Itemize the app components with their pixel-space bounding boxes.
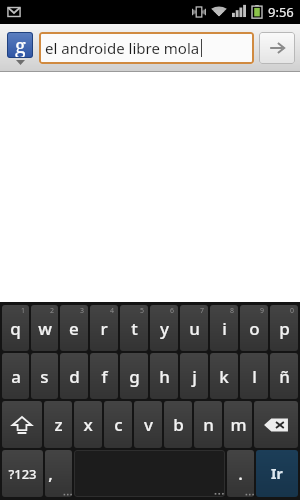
staticText: 2 [50,306,55,316]
staticText: d [69,365,80,388]
button[interactable]: h [150,353,178,399]
staticText: 9 [260,306,265,316]
button[interactable]: Backspace [254,401,298,448]
staticText: p [279,317,290,340]
staticText: b [173,413,184,436]
button[interactable]: f [90,353,118,399]
staticText: g [15,32,26,58]
button[interactable]: a [2,353,29,399]
button[interactable]: r [90,305,118,351]
button[interactable]: z [44,401,72,448]
button[interactable]: Search provider: Google [5,32,35,65]
staticText: u [189,317,200,340]
staticText: . [238,462,243,485]
button[interactable]: p [270,305,298,351]
staticText: i [222,317,227,340]
button[interactable]: n [194,401,222,448]
button[interactable]: el androide libre mola [39,32,254,64]
staticText: w [38,317,52,340]
button[interactable]: c [104,401,132,448]
staticText: 6 [170,306,175,316]
staticText: c [114,413,123,436]
staticText: 1 [21,306,26,316]
staticText: 9:56 [268,3,294,21]
staticText: q [10,317,21,340]
staticText: o [249,317,260,340]
button[interactable]: Space [74,450,225,497]
button[interactable]: g [120,353,148,399]
staticText: m [230,413,247,436]
staticText: el androide libre mola [45,38,200,58]
button[interactable]: l [240,353,268,399]
button[interactable]: Search [259,32,295,64]
button[interactable]: i [210,305,238,351]
staticText: k [219,365,229,388]
staticText: v [144,413,153,436]
staticText: n [203,413,214,436]
staticText: s [40,365,49,388]
button[interactable]: , [45,450,72,497]
staticText: ñ [279,365,290,388]
staticText: 5 [140,306,145,316]
staticText: e [69,317,79,340]
button[interactable]: y [150,305,178,351]
staticText: Ir [271,464,283,483]
button[interactable]: q [2,305,29,351]
button[interactable]: Shift [2,401,42,448]
button[interactable]: ñ [270,353,298,399]
button[interactable]: m [224,401,252,448]
button[interactable]: w [31,305,58,351]
staticText: y [160,317,169,340]
button[interactable]: k [210,353,238,399]
staticText: r [100,317,108,340]
staticText: 0 [290,306,295,316]
staticText: 7 [200,306,205,316]
staticText: 8 [230,306,235,316]
button[interactable]: d [60,353,88,399]
staticText: l [252,365,257,388]
button[interactable]: ?123 [2,450,43,497]
staticText: g [129,365,140,388]
button[interactable]: Ir [256,450,298,497]
button[interactable]: v [134,401,162,448]
button[interactable]: b [164,401,192,448]
button[interactable]: . [227,450,254,497]
button[interactable]: u [180,305,208,351]
staticText: , [48,462,53,485]
staticText: z [54,413,63,436]
button[interactable]: x [74,401,102,448]
staticText: h [159,365,170,388]
staticText: t [131,317,138,340]
staticText: 4 [110,306,115,316]
button[interactable]: e [60,305,88,351]
button[interactable]: t [120,305,148,351]
button[interactable]: s [31,353,58,399]
staticText: 3 [80,306,85,316]
staticText: f [101,365,108,388]
staticText: x [83,413,93,436]
button[interactable]: j [180,353,208,399]
staticText: j [192,365,197,388]
staticText: a [11,365,21,388]
button[interactable]: o [240,305,268,351]
staticText: ?123 [8,465,37,483]
